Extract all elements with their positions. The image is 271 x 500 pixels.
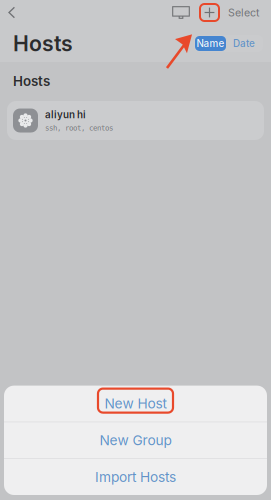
- staticText: New Host: [104, 395, 166, 412]
- button[interactable]: Displays: [165, 0, 191, 24]
- button[interactable]: Back: [0, 1, 24, 23]
- staticText: Hosts: [13, 31, 73, 56]
- staticText: Import Hosts: [95, 469, 176, 485]
- button[interactable]: aliyun hi: [0, 101, 271, 140]
- button[interactable]: Select: [223, 0, 271, 24]
- button[interactable]: New Host: [4, 386, 267, 422]
- staticText: aliyun hi: [45, 109, 86, 121]
- staticText: ssh, root, centos: [45, 124, 113, 132]
- staticText: Hosts: [13, 73, 50, 89]
- button[interactable]: Name: [195, 36, 226, 51]
- staticText: Date: [233, 37, 255, 49]
- button[interactable]: Date: [226, 36, 262, 51]
- button[interactable]: Import Hosts: [4, 459, 267, 495]
- button[interactable]: New Group: [4, 422, 267, 458]
- staticText: New Group: [99, 432, 171, 449]
- staticText: Select: [228, 6, 259, 19]
- staticText: Name: [196, 37, 224, 49]
- button[interactable]: Add: [191, 4, 223, 21]
